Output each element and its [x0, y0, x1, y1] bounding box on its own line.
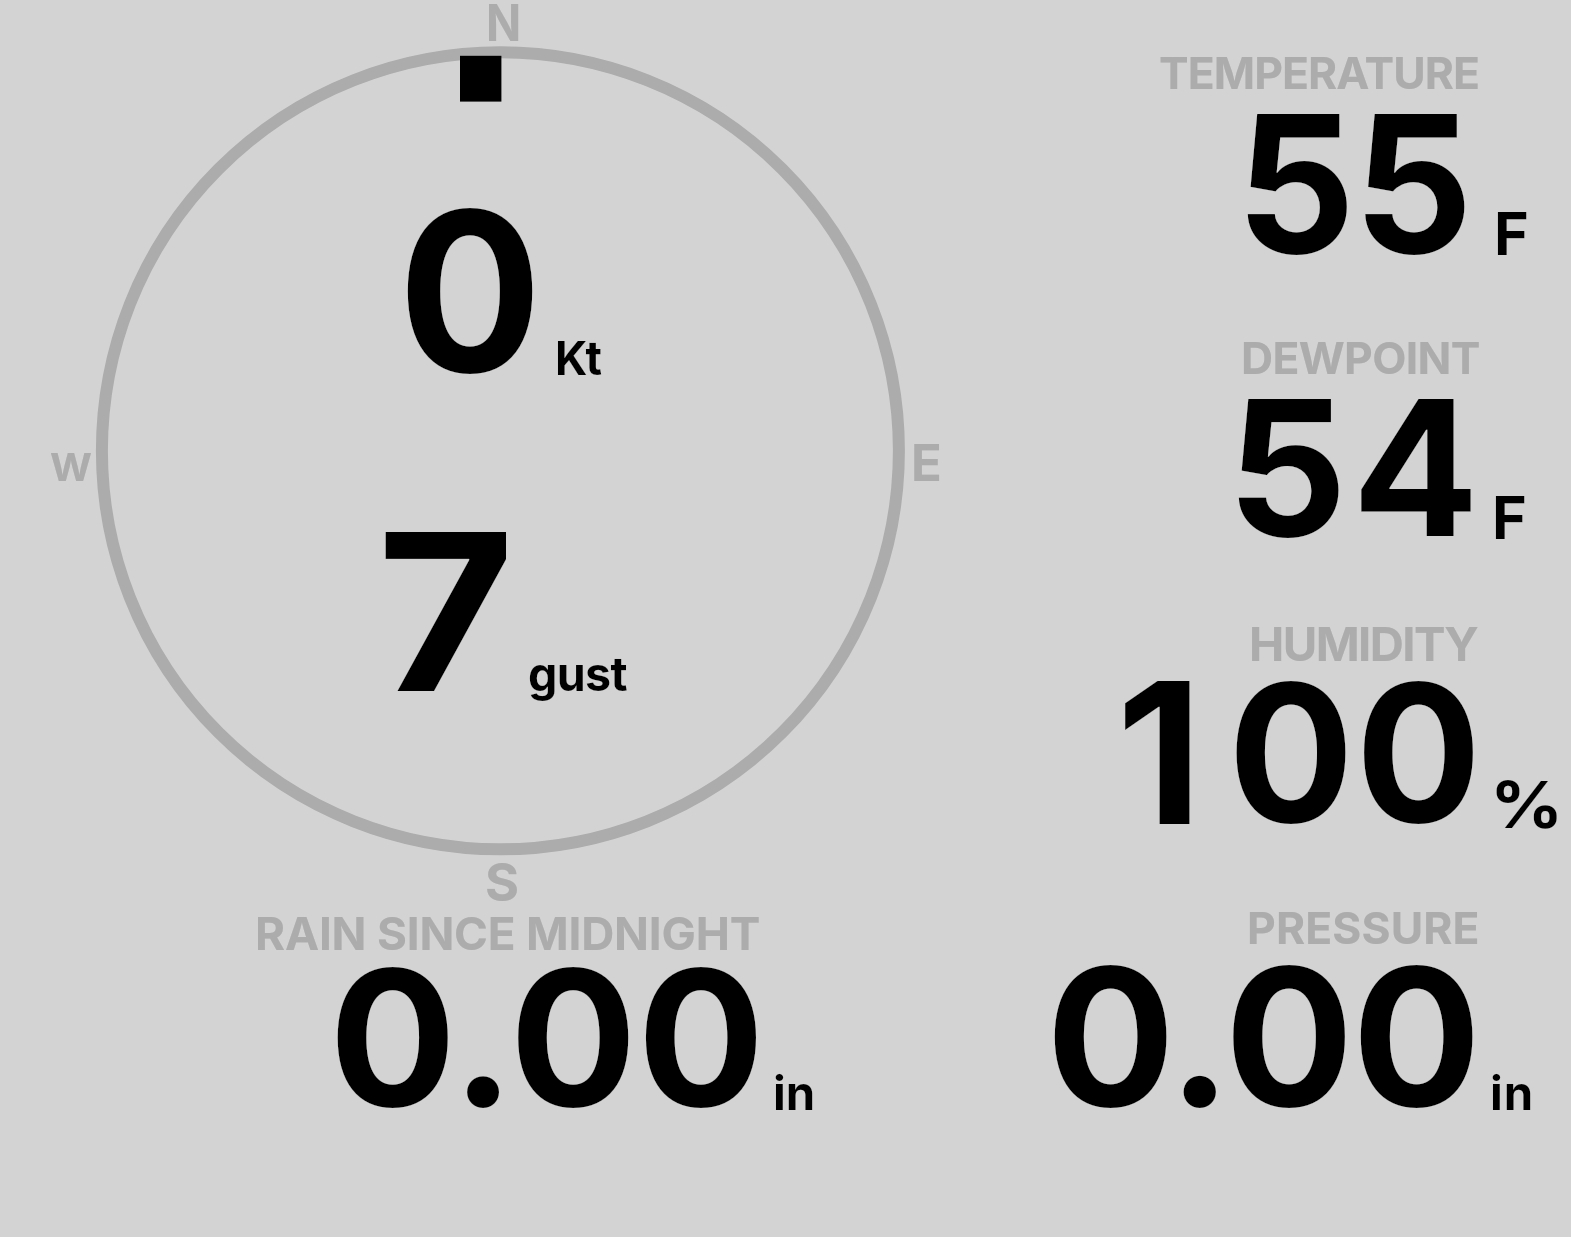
- staticText: F: [1492, 481, 1527, 553]
- staticText: Kt: [555, 329, 601, 386]
- staticText: TEMPERATURE: [1159, 46, 1479, 100]
- staticText: W: [50, 444, 92, 490]
- button[interactable]: Humidity 100 percent: [1010, 590, 1571, 855]
- staticText: F: [1494, 197, 1529, 269]
- staticText: PRESSURE: [1247, 901, 1480, 955]
- button[interactable]: Temperature 55 degrees Fahrenheit: [1010, 30, 1571, 285]
- staticText: 0.00: [1046, 920, 1480, 1152]
- button[interactable]: Pressure 0.00 inches: [1010, 880, 1571, 1140]
- button[interactable]: Dewpoint 54 degrees Fahrenheit: [1010, 300, 1571, 570]
- staticText: RAIN SINCE MIDNIGHT: [255, 906, 761, 961]
- staticText: in: [773, 1064, 816, 1121]
- staticText: in: [1490, 1064, 1535, 1121]
- staticText: 0.00: [329, 923, 766, 1152]
- staticText: DEWPOINT: [1241, 331, 1480, 385]
- staticText: N: [486, 0, 521, 53]
- staticText: 55: [1236, 68, 1471, 299]
- staticText: gust: [528, 646, 627, 702]
- staticText: %: [1490, 765, 1563, 844]
- staticText: 1: [1116, 633, 1203, 872]
- staticText: 7: [377, 479, 515, 744]
- staticText: 00: [1228, 636, 1483, 868]
- staticText: 0: [398, 157, 542, 426]
- staticText: S: [485, 851, 520, 914]
- staticText: HUMIDITY: [1249, 615, 1478, 672]
- button[interactable]: Wind direction and speed: [0, 0, 1000, 875]
- staticText: 54: [1227, 354, 1485, 581]
- staticText: E: [911, 432, 942, 493]
- button[interactable]: Rain since midnight 0.00 inches: [200, 880, 860, 1140]
